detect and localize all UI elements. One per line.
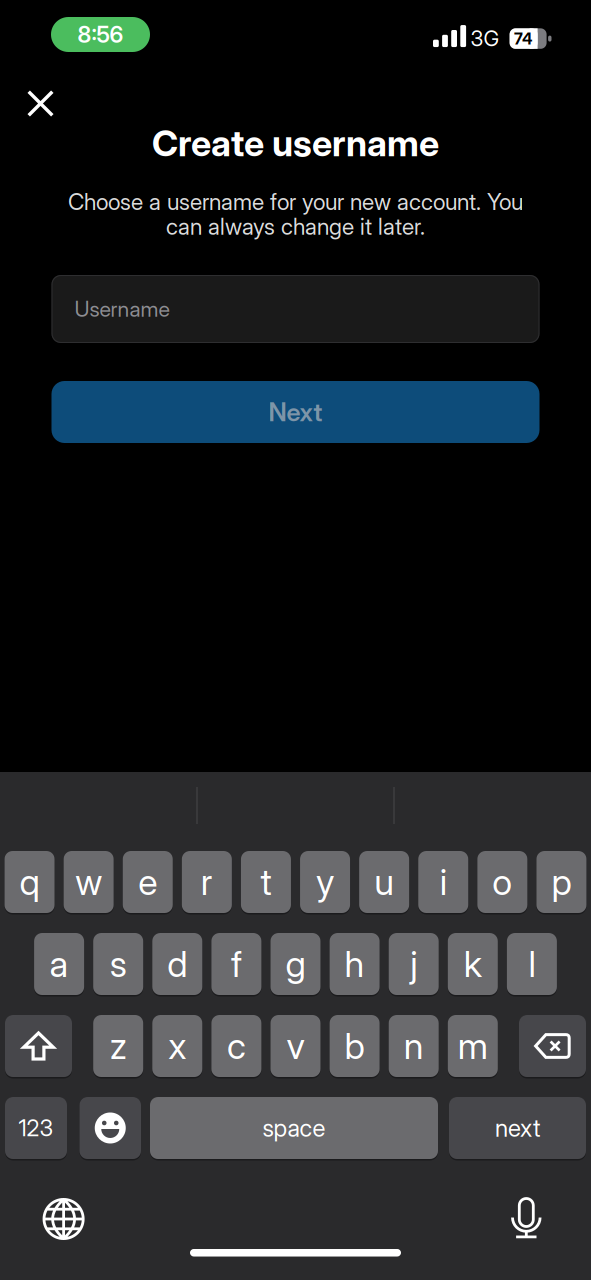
staticText: l bbox=[528, 943, 535, 985]
staticText: 3G bbox=[471, 26, 500, 51]
button[interactable]: k bbox=[448, 933, 498, 996]
staticText: p bbox=[551, 861, 571, 903]
staticText: q bbox=[20, 861, 40, 903]
button[interactable]: q bbox=[5, 851, 55, 914]
button[interactable]: t bbox=[241, 851, 291, 914]
button[interactable]: m bbox=[448, 1015, 498, 1078]
staticText: e bbox=[138, 861, 157, 903]
staticText: b bbox=[345, 1025, 365, 1067]
staticText: z bbox=[110, 1025, 127, 1067]
button[interactable]: space bbox=[150, 1097, 438, 1160]
button[interactable]: l bbox=[507, 933, 557, 996]
button[interactable]: h bbox=[330, 933, 380, 996]
staticText: w bbox=[75, 861, 102, 903]
button[interactable]: d bbox=[152, 933, 202, 996]
staticText: n bbox=[404, 1025, 424, 1067]
button[interactable]: n bbox=[389, 1015, 439, 1078]
staticText: o bbox=[492, 861, 512, 903]
button[interactable]: r bbox=[182, 851, 232, 914]
button[interactable]: Delete bbox=[519, 1015, 586, 1078]
staticText: Create username bbox=[152, 122, 439, 164]
staticText: t bbox=[260, 861, 271, 903]
button[interactable]: u bbox=[359, 851, 409, 914]
button[interactable]: y bbox=[300, 851, 350, 914]
button[interactable]: b bbox=[330, 1015, 380, 1078]
button[interactable]: z bbox=[93, 1015, 143, 1078]
staticText: j bbox=[410, 943, 417, 985]
button[interactable]: Emoji bbox=[79, 1097, 141, 1160]
button[interactable]: Username bbox=[51, 275, 539, 343]
staticText: Choose a username for your new account. … bbox=[68, 188, 523, 215]
button[interactable]: f bbox=[211, 933, 261, 996]
button[interactable]: 123 bbox=[5, 1097, 67, 1160]
staticText: next bbox=[495, 1114, 540, 1142]
staticText: 74 bbox=[514, 29, 533, 48]
staticText: d bbox=[167, 943, 187, 985]
button[interactable]: Dictation bbox=[503, 1196, 549, 1241]
staticText: f bbox=[231, 943, 242, 985]
staticText: g bbox=[285, 943, 305, 985]
button[interactable]: j bbox=[389, 933, 439, 996]
button[interactable]: e bbox=[123, 851, 173, 914]
staticText: u bbox=[374, 861, 394, 903]
button[interactable]: x bbox=[152, 1015, 202, 1078]
button[interactable]: c bbox=[211, 1015, 261, 1078]
button[interactable]: Next bbox=[51, 381, 539, 443]
staticText: v bbox=[286, 1025, 304, 1067]
staticText: k bbox=[464, 943, 482, 985]
button[interactable]: Switch keyboard bbox=[43, 1198, 85, 1240]
staticText: Next bbox=[268, 397, 322, 427]
button[interactable]: Shift bbox=[5, 1015, 72, 1078]
button[interactable]: a bbox=[34, 933, 84, 996]
button[interactable]: g bbox=[270, 933, 320, 996]
staticText: 8:56 bbox=[77, 21, 123, 48]
staticText: x bbox=[168, 1025, 186, 1067]
staticText: h bbox=[345, 943, 365, 985]
button[interactable]: Close bbox=[27, 90, 54, 117]
button[interactable]: p bbox=[536, 851, 586, 914]
staticText: y bbox=[316, 861, 334, 903]
button[interactable]: o bbox=[477, 851, 527, 914]
staticText: m bbox=[458, 1025, 488, 1067]
staticText: c bbox=[227, 1025, 246, 1067]
button[interactable]: v bbox=[270, 1015, 320, 1078]
button[interactable]: Return to call bbox=[51, 17, 150, 52]
button[interactable]: s bbox=[93, 933, 143, 996]
staticText: i bbox=[440, 861, 447, 903]
staticText: Username bbox=[74, 296, 169, 322]
staticText: 123 bbox=[18, 1115, 53, 1141]
staticText: s bbox=[110, 943, 127, 985]
staticText: a bbox=[50, 943, 69, 985]
staticText: r bbox=[201, 861, 213, 903]
button[interactable]: next bbox=[449, 1097, 586, 1160]
button[interactable]: w bbox=[64, 851, 114, 914]
staticText: space bbox=[262, 1114, 325, 1142]
button[interactable]: i bbox=[418, 851, 468, 914]
staticText: can always change it later. bbox=[166, 213, 425, 240]
